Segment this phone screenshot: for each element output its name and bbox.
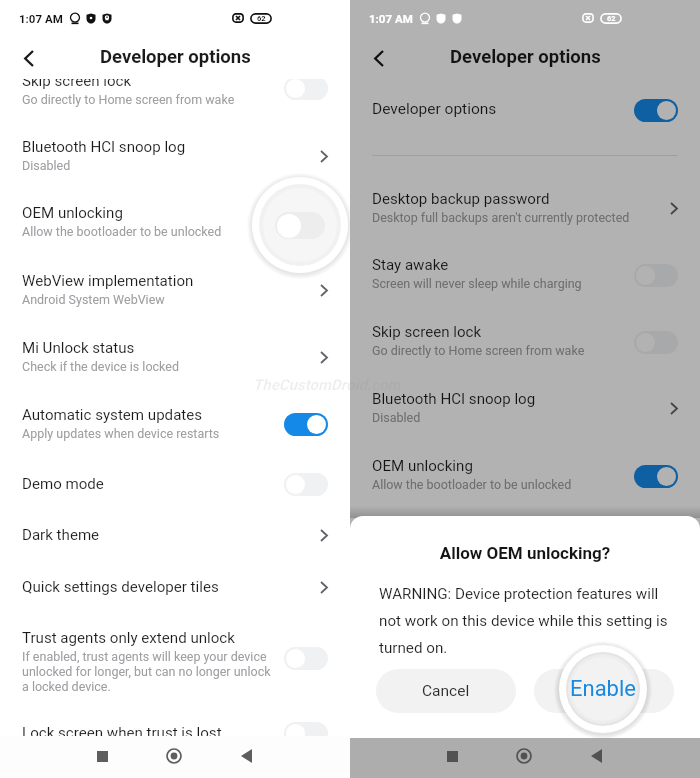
- button[interactable]: Open: [302, 143, 328, 169]
- button[interactable]: Open: [302, 522, 328, 548]
- button[interactable]: Off: [284, 473, 328, 496]
- staticText: TheCustomDroid.com: [253, 376, 401, 394]
- staticText: Disabled: [22, 158, 71, 173]
- staticText: Automatic system updates: [22, 406, 203, 424]
- staticText: Developer options: [100, 46, 251, 68]
- staticText: Go directly to Home screen from wake: [22, 92, 235, 107]
- button[interactable]: [0, 516, 350, 560]
- button[interactable]: Navigate up: [359, 38, 399, 78]
- button[interactable]: Off: [284, 79, 328, 100]
- staticText: 1:07 AM: [369, 12, 413, 25]
- button[interactable]: Off: [284, 722, 328, 736]
- staticText: Desktop full backups aren't currently pr…: [372, 210, 630, 225]
- staticText: Disabled: [372, 410, 421, 425]
- staticText: Demo mode: [22, 475, 104, 493]
- button[interactable]: Off: [634, 264, 678, 287]
- staticText: Check if the device is locked: [22, 359, 179, 374]
- staticText: Developer options: [450, 46, 601, 68]
- staticText: 1:07 AM: [19, 12, 63, 25]
- staticText: Developer options: [372, 100, 497, 118]
- staticText: turned on.: [379, 639, 448, 657]
- button[interactable]: Cancel: [376, 669, 516, 713]
- staticText: Bluetooth HCI snoop log: [22, 138, 186, 156]
- staticText: Lock screen when trust is lost: [22, 724, 222, 736]
- button[interactable]: Back: [228, 738, 264, 774]
- staticText: Trust agents only extend unlock: [22, 629, 235, 647]
- staticText: Quick settings developer tiles: [22, 578, 219, 596]
- button[interactable]: On: [634, 99, 678, 122]
- button[interactable]: Back: [578, 738, 614, 774]
- button[interactable]: [0, 128, 350, 176]
- button[interactable]: [350, 447, 700, 495]
- button[interactable]: Enable: [554, 640, 652, 738]
- button[interactable]: [0, 262, 350, 310]
- staticText: OEM unlocking: [372, 457, 473, 475]
- staticText: TheCustomDroid.com: [253, 376, 401, 394]
- button[interactable]: Open: [302, 277, 328, 303]
- button[interactable]: On: [634, 465, 678, 488]
- button[interactable]: [0, 465, 350, 509]
- button[interactable]: [350, 313, 700, 361]
- staticText: Allow the bootloader to be unlocked: [372, 477, 572, 492]
- staticText: WebView implementation: [22, 272, 194, 290]
- staticText: 62: [607, 14, 616, 23]
- staticText: Mi Unlock status: [22, 339, 135, 357]
- button[interactable]: Recent apps: [84, 738, 120, 774]
- button[interactable]: [0, 396, 350, 444]
- staticText: Enable: [581, 682, 628, 700]
- button[interactable]: Off: [284, 647, 328, 670]
- staticText: Stay awake: [372, 256, 449, 274]
- staticText: Desktop backup password: [372, 190, 550, 208]
- button[interactable]: [0, 619, 350, 703]
- button[interactable]: Off: [284, 213, 328, 236]
- button[interactable]: Enable: [534, 669, 674, 713]
- button[interactable]: On: [284, 413, 328, 436]
- button[interactable]: [0, 194, 350, 242]
- button[interactable]: Open: [652, 195, 678, 221]
- button[interactable]: [350, 246, 700, 294]
- button[interactable]: [0, 329, 350, 377]
- staticText: OEM unlocking: [22, 204, 123, 222]
- button[interactable]: Navigate up: [9, 38, 49, 78]
- button[interactable]: Open: [302, 574, 328, 600]
- staticText: Android System WebView: [22, 292, 165, 307]
- staticText: WARNING: Device protection features will: [379, 585, 659, 603]
- button[interactable]: [350, 380, 700, 428]
- staticText: If enabled, trust agents will keep your …: [22, 649, 267, 664]
- button[interactable]: [0, 714, 350, 736]
- staticText: 62: [257, 14, 266, 23]
- staticText: Screen will never sleep while charging: [372, 276, 582, 291]
- button[interactable]: [0, 79, 350, 110]
- button[interactable]: Open: [652, 395, 678, 421]
- staticText: Apply updates when device restarts: [22, 426, 220, 441]
- button[interactable]: Home: [506, 738, 542, 774]
- button[interactable]: Off: [634, 331, 678, 354]
- staticText: unlocked for longer, but can no longer u…: [22, 664, 271, 679]
- button[interactable]: [0, 568, 350, 612]
- button[interactable]: Home: [156, 738, 192, 774]
- button[interactable]: Open: [302, 344, 328, 370]
- staticText: not work on this device while this setti…: [379, 612, 668, 630]
- button[interactable]: [350, 90, 700, 134]
- button[interactable]: Recent apps: [434, 738, 470, 774]
- staticText: Bluetooth HCI snoop log: [372, 390, 536, 408]
- button[interactable]: OEM unlocking off: [275, 212, 325, 239]
- staticText: Go directly to Home screen from wake: [372, 343, 585, 358]
- button[interactable]: [350, 180, 700, 228]
- staticText: Skip screen lock: [22, 79, 132, 90]
- staticText: Dark theme: [22, 526, 100, 544]
- staticText: Enable: [570, 676, 636, 702]
- staticText: Skip screen lock: [372, 323, 482, 341]
- staticText: a locked device.: [22, 679, 111, 694]
- staticText: Allow the bootloader to be unlocked: [22, 224, 222, 239]
- staticText: Allow OEM unlocking?: [350, 543, 700, 563]
- staticText: Cancel: [422, 682, 470, 700]
